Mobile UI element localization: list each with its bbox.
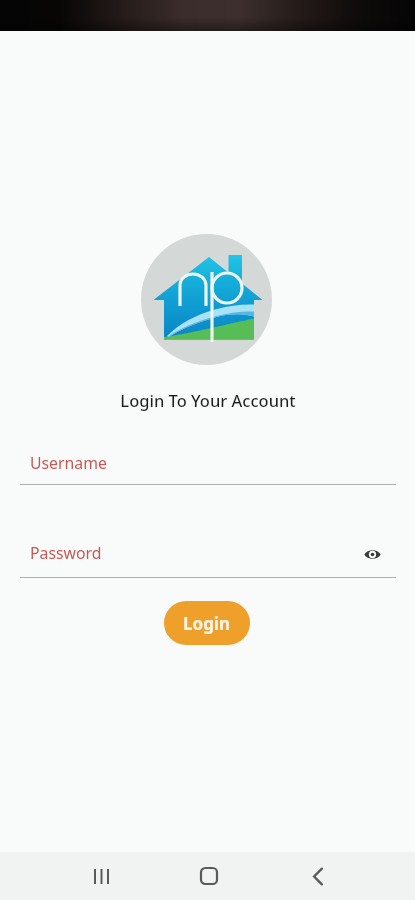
staticText: Login To Your Account [120,389,296,411]
button[interactable]: Recents [77,852,125,900]
button[interactable]: Home [185,852,233,900]
button[interactable]: Login [164,601,250,645]
button[interactable]: Back [294,852,342,900]
staticText: Login [183,612,231,635]
button[interactable]: Show password [357,539,387,569]
staticText: Username [30,452,107,474]
staticText: Password [30,542,102,564]
